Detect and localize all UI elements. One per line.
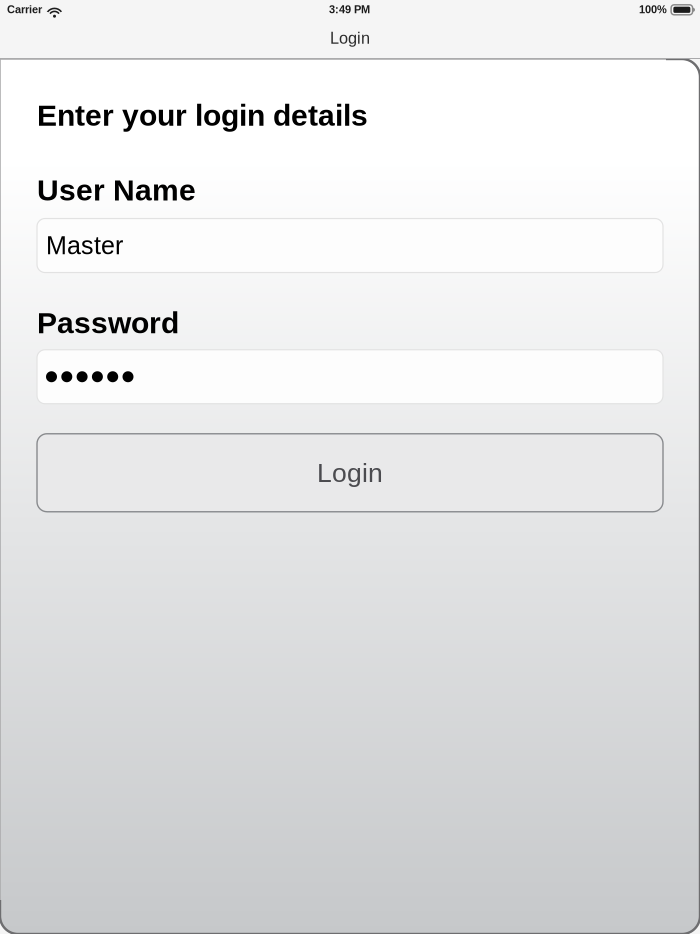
staticText: Password bbox=[37, 306, 179, 340]
staticText: User Name bbox=[37, 173, 196, 207]
staticText: Master bbox=[46, 232, 123, 259]
staticText: Carrier bbox=[7, 3, 42, 16]
staticText: Login bbox=[330, 29, 370, 47]
staticText: Login bbox=[317, 458, 383, 487]
button[interactable]: Login bbox=[37, 434, 663, 512]
staticText: Enter your login details bbox=[37, 99, 368, 132]
staticText: 3:49 PM bbox=[329, 3, 370, 16]
staticText: 100% bbox=[639, 3, 667, 16]
